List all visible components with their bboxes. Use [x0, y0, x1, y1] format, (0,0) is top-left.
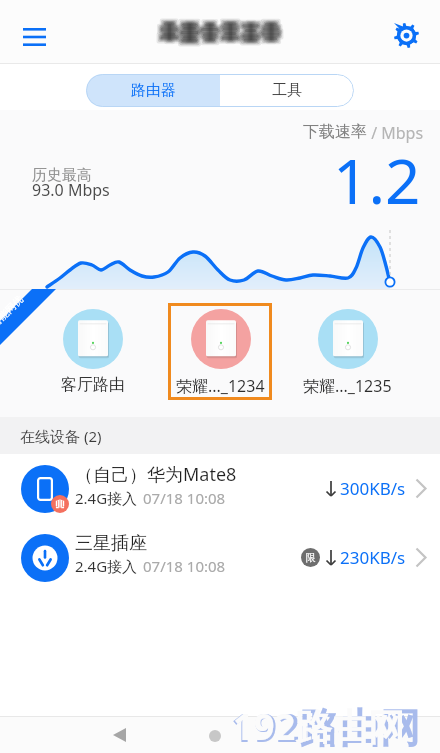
staticText: （自己）华为Mate8 — [75, 462, 237, 487]
staticText: 荣耀..._1234 — [176, 375, 265, 397]
staticText: 路由器 — [131, 81, 176, 100]
staticText: 300KB/s — [340, 477, 406, 500]
button[interactable]: 荣耀..._1234 — [168, 303, 272, 400]
staticText: 在线设备 (2) — [20, 426, 102, 446]
staticText: 230KB/s — [340, 546, 406, 569]
staticText: 93.0 Mbps — [32, 179, 110, 201]
staticText: 192路由网 — [231, 699, 420, 753]
button[interactable]: 工具 — [220, 74, 354, 107]
staticText: 三星插座 — [75, 532, 147, 555]
button[interactable]: Menu — [12, 15, 56, 59]
staticText: 07/18 10:08 — [143, 488, 226, 508]
staticText: 荣耀..._1235 — [303, 375, 392, 397]
staticText: 下载速率 — [303, 122, 367, 142]
staticText: 工具 — [272, 81, 302, 100]
button[interactable]: 三星插座 — [0, 523, 440, 592]
staticText: 智能网优 — [0, 293, 26, 330]
staticText: 历史最高 — [32, 166, 92, 185]
button[interactable]: 荣耀..._1235 — [295, 303, 399, 400]
staticText: 1.2 — [333, 138, 421, 222]
staticText: 客厅路由 — [61, 375, 125, 395]
button[interactable]: Settings — [384, 13, 428, 57]
staticText: 192路由网 — [233, 701, 405, 751]
staticText: 限 — [306, 551, 316, 564]
staticText: / Mbps — [367, 122, 424, 144]
button[interactable]: 客厅路由 — [41, 303, 145, 400]
button[interactable]: （自己）华为Mate8 — [0, 454, 440, 523]
staticText: 2.4G接入 — [75, 556, 138, 576]
staticText: 2.4G接入 — [75, 488, 138, 508]
button[interactable]: 路由器 — [86, 74, 220, 107]
staticText: 07/18 10:08 — [143, 556, 226, 576]
